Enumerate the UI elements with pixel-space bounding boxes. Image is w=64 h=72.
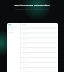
staticText: Organise, tag and review every item — [0, 8, 64, 11]
staticText: Easy to manage classification — [0, 3, 64, 6]
button[interactable] — [7, 23, 58, 72]
